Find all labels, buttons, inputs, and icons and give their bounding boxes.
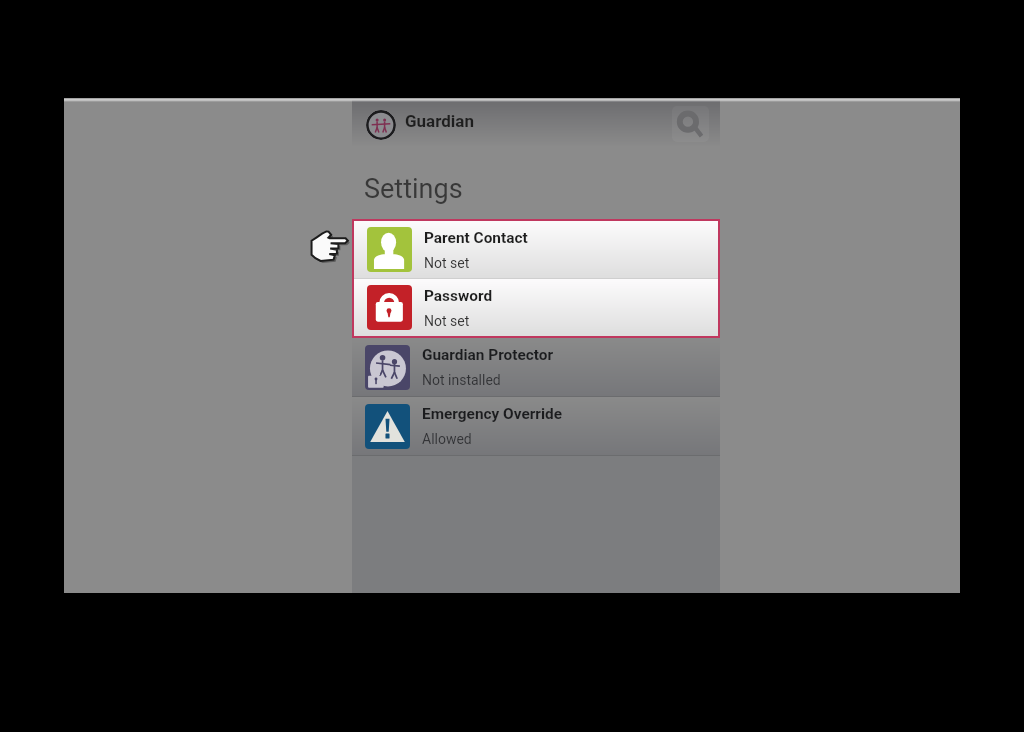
staticText: Settings	[364, 173, 463, 205]
button[interactable]: Emergency Override	[352, 397, 720, 455]
staticText: Guardian Protector	[422, 346, 554, 364]
staticText: Emergency Override	[422, 405, 563, 423]
button[interactable]: Search	[672, 106, 709, 142]
staticText: Guardian	[405, 111, 474, 131]
button[interactable]: Guardian Protector	[352, 338, 720, 396]
button[interactable]: Guardian	[352, 98, 720, 146]
staticText: Not set	[424, 255, 470, 271]
staticText: Not set	[424, 313, 470, 329]
button[interactable]: Password	[354, 279, 718, 336]
button[interactable]: Parent Contact	[354, 221, 718, 278]
staticText: Password	[424, 287, 493, 305]
staticText: Parent Contact	[424, 229, 528, 247]
staticText: Allowed	[422, 431, 472, 447]
staticText: Not installed	[422, 372, 501, 388]
